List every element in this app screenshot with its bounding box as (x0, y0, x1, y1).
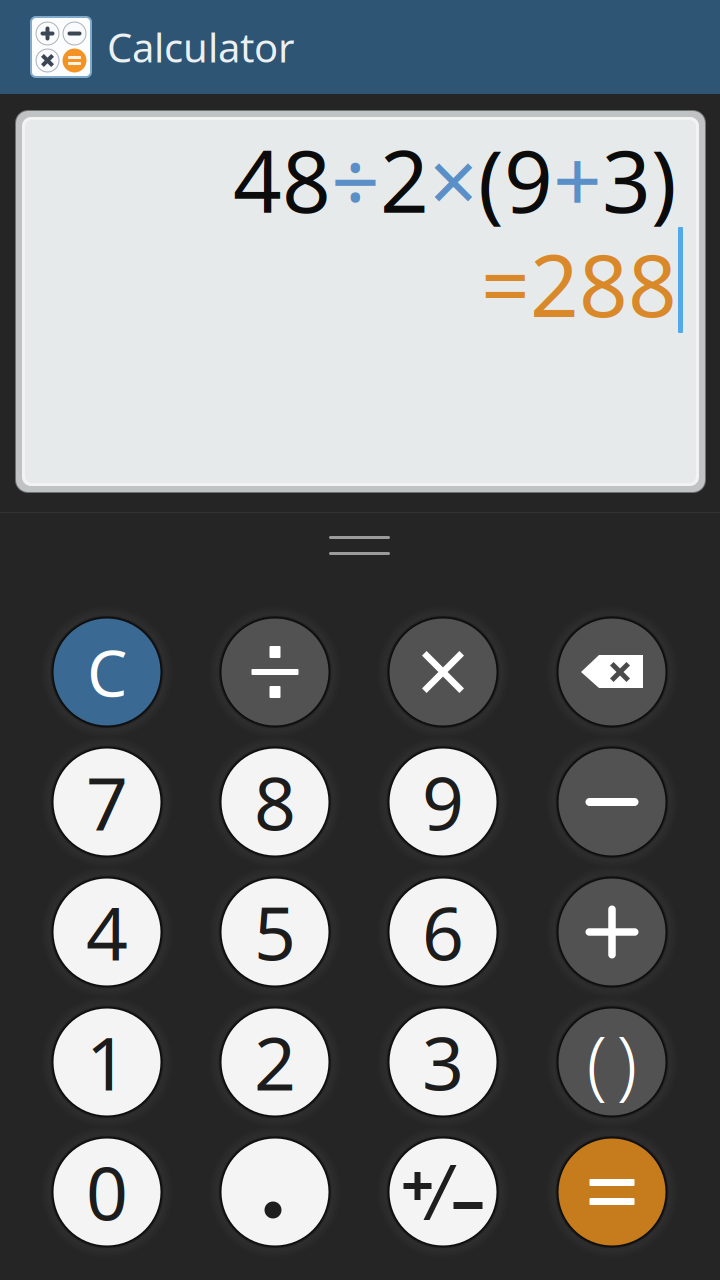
staticText: 3) (602, 123, 677, 236)
button[interactable]: ( (546, 996, 677, 1127)
button[interactable] (209, 606, 340, 737)
button[interactable]: C (41, 606, 172, 737)
button[interactable]: 5 (209, 866, 340, 997)
staticText: 4 (86, 883, 128, 981)
button[interactable] (546, 606, 677, 737)
button[interactable] (209, 1126, 340, 1257)
staticText: 0 (86, 1143, 128, 1241)
button[interactable]: 8 (209, 736, 340, 867)
staticText: 8 (254, 753, 296, 851)
staticText: 6 (422, 883, 464, 981)
staticText: Calculator (107, 20, 295, 73)
button[interactable]: 7 (41, 736, 172, 867)
button[interactable]: 9 (377, 736, 508, 867)
button[interactable]: 6 (377, 866, 508, 997)
staticText: =288 (481, 227, 677, 341)
button[interactable] (546, 1126, 677, 1257)
staticText: × (429, 123, 478, 236)
staticText: (9 (478, 123, 553, 236)
button[interactable] (546, 866, 677, 997)
staticText: 2 (380, 123, 429, 236)
staticText: 3 (422, 1013, 464, 1111)
staticText: ÷ (331, 123, 380, 236)
staticText: ) (616, 1012, 637, 1112)
button[interactable] (546, 736, 677, 867)
staticText: 9 (422, 753, 464, 851)
staticText: 5 (254, 883, 296, 981)
staticText: C (87, 629, 127, 714)
staticText: 48 (233, 123, 331, 236)
staticText: 7 (86, 753, 128, 851)
staticText: 2 (254, 1013, 296, 1111)
button[interactable]: 0 (41, 1126, 172, 1257)
button[interactable]: 2 (209, 996, 340, 1127)
button[interactable] (377, 1126, 508, 1257)
staticText: + (553, 123, 602, 236)
staticText: ( (586, 1012, 607, 1112)
button[interactable]: 1 (41, 996, 172, 1127)
button[interactable]: Calculator (0, 0, 720, 94)
staticText: 1 (86, 1013, 128, 1111)
button[interactable]: 3 (377, 996, 508, 1127)
button[interactable]: 4 (41, 866, 172, 997)
button[interactable] (377, 606, 508, 737)
